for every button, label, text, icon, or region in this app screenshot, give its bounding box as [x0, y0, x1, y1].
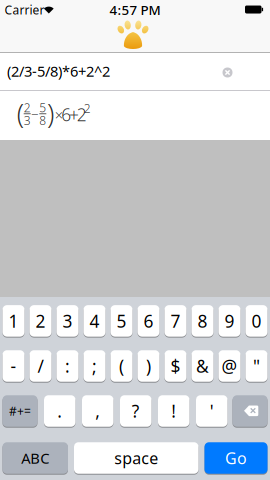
button[interactable]: space	[74, 442, 198, 474]
button[interactable]	[222, 67, 232, 77]
staticText: )	[146, 354, 151, 377]
button[interactable]: &	[191, 350, 213, 382]
button[interactable]	[116, 20, 149, 48]
staticText: &	[196, 354, 209, 377]
button[interactable]: 5	[110, 305, 132, 337]
staticText: :	[65, 354, 70, 377]
staticText: 9	[224, 309, 234, 332]
staticText: 8	[197, 309, 207, 332]
button[interactable]	[232, 395, 267, 427]
staticText: space	[114, 447, 158, 469]
button[interactable]: (	[110, 350, 132, 382]
staticText: −	[31, 105, 39, 123]
button[interactable]: '	[196, 395, 227, 427]
staticText: 6	[143, 309, 153, 332]
staticText: ABC	[21, 448, 49, 468]
button[interactable]: -	[2, 350, 24, 382]
staticText: 2	[35, 309, 45, 332]
staticText: 2	[84, 100, 91, 116]
staticText: Go	[225, 447, 247, 469]
staticText: !	[171, 399, 176, 422]
staticText: .	[57, 399, 62, 422]
button[interactable]: $	[164, 350, 186, 382]
staticText: (2/3-5/8)*6+2^2	[7, 61, 110, 81]
staticText: 5	[39, 100, 46, 115]
staticText: Carrier	[4, 2, 44, 18]
button[interactable]: ?	[120, 395, 151, 427]
button[interactable]: ;	[83, 350, 105, 382]
staticText: "	[253, 354, 260, 377]
staticText: 3	[62, 309, 72, 332]
staticText: 2	[77, 103, 87, 126]
staticText: (	[119, 354, 124, 377]
button[interactable]: 9	[218, 305, 240, 337]
staticText: 6	[61, 103, 71, 126]
staticText: ;	[92, 354, 97, 377]
staticText: /	[37, 354, 43, 377]
staticText: #+=	[9, 403, 31, 419]
button[interactable]: 0	[245, 305, 267, 337]
staticText: 8	[39, 112, 46, 128]
button[interactable]: !	[158, 395, 189, 427]
staticText: ,	[95, 399, 100, 422]
button[interactable]: 2	[29, 305, 51, 337]
staticText: 4:57 PM	[109, 1, 160, 19]
staticText: $	[170, 354, 180, 377]
button[interactable]: )	[137, 350, 159, 382]
staticText: 4	[89, 309, 99, 332]
staticText: 5	[116, 309, 126, 332]
staticText: 3	[24, 112, 31, 128]
button[interactable]: Go	[204, 442, 267, 474]
button[interactable]: @	[218, 350, 240, 382]
staticText: @	[221, 354, 237, 377]
button[interactable]: /	[29, 350, 51, 382]
button[interactable]: ABC	[2, 442, 68, 474]
button[interactable]: 1	[2, 305, 24, 337]
button[interactable]: .	[44, 395, 75, 427]
staticText: ?	[132, 399, 140, 422]
button[interactable]: 7	[164, 305, 186, 337]
staticText: 0	[251, 309, 261, 332]
staticText: (	[17, 96, 24, 131]
button[interactable]: #+=	[2, 395, 37, 427]
button[interactable]: 6	[137, 305, 159, 337]
staticText: +	[69, 103, 79, 126]
button[interactable]: ,	[82, 395, 113, 427]
button[interactable]: 4	[83, 305, 105, 337]
staticText: ×	[55, 105, 63, 125]
staticText: -	[10, 354, 16, 377]
staticText: '	[210, 399, 214, 422]
button[interactable]: "	[245, 350, 267, 382]
staticText: )	[47, 96, 54, 131]
button[interactable]: 8	[191, 305, 213, 337]
staticText: 7	[170, 309, 180, 332]
staticText: 1	[8, 309, 18, 332]
button[interactable]: :	[56, 350, 78, 382]
button[interactable]: 3	[56, 305, 78, 337]
staticText: 2	[24, 100, 31, 115]
